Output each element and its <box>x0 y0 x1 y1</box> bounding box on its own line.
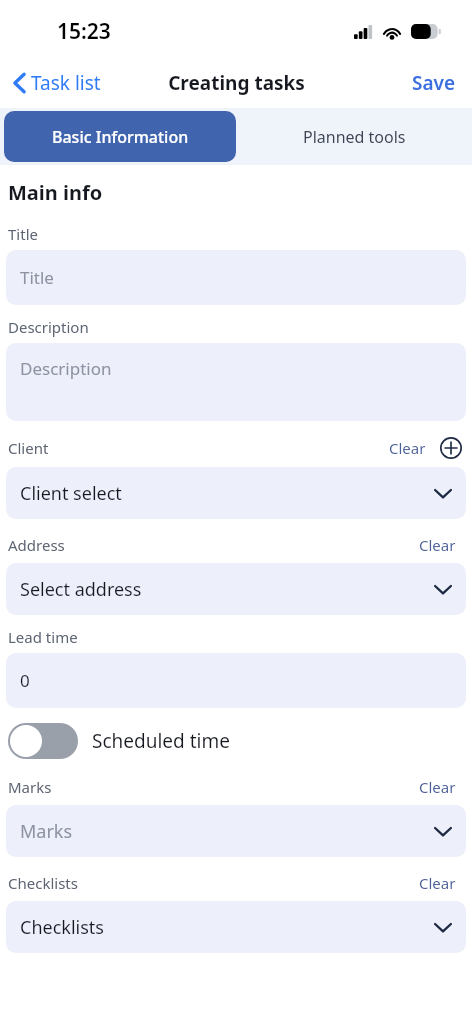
staticText: Title <box>8 224 38 244</box>
staticText: Marks <box>8 777 52 797</box>
staticText: Address <box>8 535 65 555</box>
button[interactable]: Add client <box>436 433 466 463</box>
staticText: Title <box>20 266 54 289</box>
button[interactable]: Description <box>6 343 466 421</box>
staticText: Checklists <box>20 915 104 940</box>
button[interactable]: Clear <box>413 531 462 559</box>
staticText: Clear <box>389 438 426 458</box>
staticText: 15:23 <box>57 17 111 46</box>
staticText: Description <box>20 357 112 380</box>
button[interactable]: Task list <box>0 64 111 102</box>
staticText: Save <box>412 70 456 96</box>
button[interactable]: Select address <box>6 563 466 615</box>
button[interactable]: Clear <box>413 773 462 801</box>
button[interactable]: Save <box>396 62 472 104</box>
button[interactable]: 0 <box>6 653 466 708</box>
staticText: Basic Information <box>52 126 189 148</box>
button[interactable]: Basic Information <box>4 111 236 162</box>
button[interactable]: Checklists <box>6 901 466 953</box>
staticText: Planned tools <box>303 126 406 148</box>
button[interactable]: Clear <box>413 869 462 897</box>
staticText: Select address <box>20 577 142 602</box>
staticText: Checklists <box>8 873 78 893</box>
staticText: 0 <box>20 669 30 692</box>
staticText: Clear <box>419 777 456 797</box>
staticText: Client select <box>20 481 122 506</box>
staticText: Clear <box>419 873 456 893</box>
staticText: Description <box>8 317 89 337</box>
staticText: Task list <box>31 70 101 96</box>
staticText: Client <box>8 438 49 458</box>
button[interactable]: Title <box>6 250 466 305</box>
staticText: Creating tasks <box>168 70 305 96</box>
button[interactable]: Clear <box>383 434 432 462</box>
button[interactable]: Planned tools <box>236 108 472 165</box>
staticText: Lead time <box>8 627 78 647</box>
staticText: Marks <box>20 819 73 844</box>
button[interactable]: Marks <box>6 805 466 857</box>
staticText: Scheduled time <box>92 728 230 754</box>
staticText: Clear <box>419 535 456 555</box>
button[interactable]: Scheduled time toggle <box>6 723 78 759</box>
staticText: Main info <box>8 179 103 206</box>
button[interactable]: Client select <box>6 467 466 519</box>
